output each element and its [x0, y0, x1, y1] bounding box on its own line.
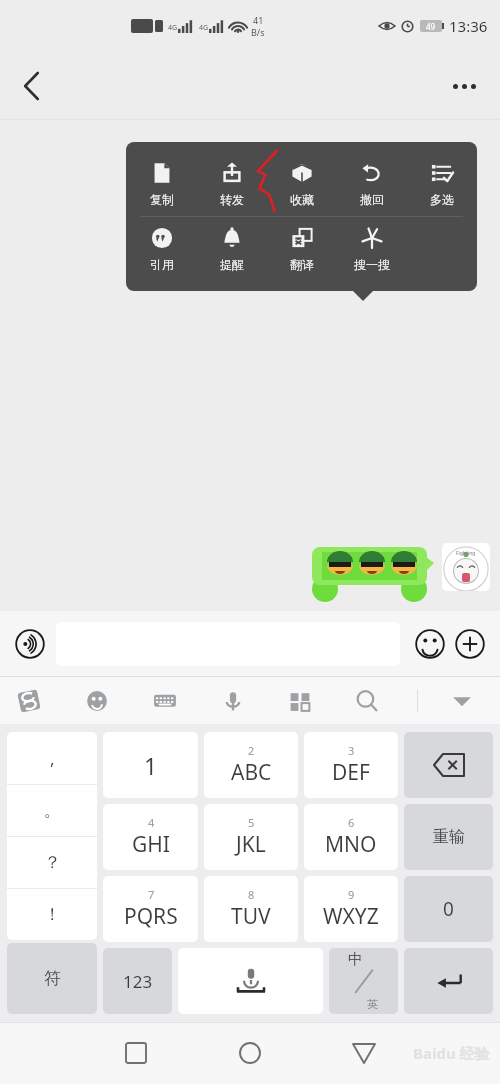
- button[interactable]: 4: [103, 804, 198, 870]
- staticText: 4G: [199, 23, 209, 33]
- staticText: PQRS: [124, 902, 178, 931]
- staticText: B/s: [251, 26, 265, 38]
- staticText: Fighting: [456, 550, 476, 557]
- button[interactable]: More: [450, 624, 490, 664]
- staticText: 收藏: [290, 192, 314, 207]
- button[interactable]: Voice input: [10, 624, 50, 664]
- staticText: MNO: [325, 830, 377, 859]
- staticText: DEF: [332, 758, 370, 787]
- staticText: TUV: [231, 902, 271, 931]
- button[interactable]: Sogou input: [12, 684, 46, 718]
- staticText: 9: [348, 887, 355, 902]
- button[interactable]: Emoji: [80, 684, 114, 718]
- staticText: 2: [248, 743, 255, 758]
- staticText: 符: [44, 968, 61, 989]
- button[interactable]: Home: [226, 1029, 274, 1077]
- button[interactable]: Hide keyboard: [445, 684, 479, 718]
- staticText: 5: [248, 815, 255, 830]
- button[interactable]: 1: [103, 732, 198, 798]
- button[interactable]: 0: [404, 876, 493, 942]
- button[interactable]: Backspace: [404, 732, 493, 798]
- button[interactable]: Back: [6, 60, 58, 112]
- staticText: JKL: [236, 830, 266, 859]
- button[interactable]: 撤回: [337, 152, 407, 216]
- button[interactable]: ,: [7, 732, 97, 784]
- button[interactable]: Space: [178, 948, 323, 1014]
- button[interactable]: 重输: [404, 804, 493, 870]
- button[interactable]: 提醒: [197, 217, 267, 281]
- staticText: Baidu 经验: [413, 1043, 490, 1063]
- staticText: 49: [426, 21, 436, 32]
- staticText: 撤回: [360, 192, 384, 207]
- staticText: ？: [44, 852, 61, 873]
- staticText: 转发: [220, 192, 244, 207]
- button[interactable]: 9: [304, 876, 398, 942]
- button[interactable]: Emoji: [410, 624, 450, 664]
- button[interactable]: Chinese English toggle: [329, 948, 398, 1014]
- button[interactable]: More options: [438, 60, 490, 112]
- button[interactable]: 7: [103, 876, 198, 942]
- button[interactable]: ？: [7, 837, 97, 888]
- staticText: 13:36: [449, 16, 488, 36]
- button[interactable]: 转发: [197, 152, 267, 216]
- staticText: ,: [50, 747, 55, 770]
- staticText: 英: [367, 997, 378, 1011]
- staticText: 1: [144, 750, 158, 781]
- staticText: 3: [348, 743, 355, 758]
- button[interactable]: Recents: [112, 1029, 160, 1077]
- staticText: 翻译: [290, 257, 314, 272]
- button[interactable]: 6: [304, 804, 398, 870]
- button[interactable]: Voice: [216, 684, 250, 718]
- button[interactable]: Panel: [283, 684, 317, 718]
- staticText: 多选: [430, 192, 454, 207]
- staticText: 8: [248, 887, 255, 902]
- staticText: 复制: [150, 192, 174, 207]
- staticText: 。: [44, 800, 61, 821]
- button[interactable]: Search: [350, 684, 384, 718]
- button[interactable]: 123: [103, 948, 172, 1014]
- staticText: 4: [148, 815, 155, 830]
- staticText: 中: [348, 950, 363, 969]
- staticText: 提醒: [220, 257, 244, 272]
- staticText: 123: [123, 970, 153, 993]
- staticText: 重输: [433, 827, 465, 847]
- staticText: 41: [253, 14, 264, 26]
- staticText: GHI: [132, 830, 170, 859]
- button[interactable]: 引用: [126, 217, 197, 281]
- staticText: 4G: [168, 23, 178, 33]
- button[interactable]: Avatar: [442, 543, 490, 591]
- button[interactable]: 。: [7, 785, 97, 836]
- button[interactable]: 搜一搜: [337, 217, 407, 281]
- button[interactable]: 符: [7, 943, 97, 1014]
- staticText: 0: [443, 896, 454, 922]
- staticText: 搜一搜: [354, 257, 390, 272]
- button[interactable]: Back: [340, 1029, 388, 1077]
- button[interactable]: 5: [204, 804, 298, 870]
- staticText: 引用: [150, 257, 174, 272]
- button[interactable]: 8: [204, 876, 298, 942]
- button[interactable]: Enter: [404, 948, 493, 1014]
- button[interactable]: Keyboard layout: [148, 684, 182, 718]
- button[interactable]: 3: [304, 732, 398, 798]
- staticText: ABC: [231, 758, 272, 787]
- staticText: ！: [44, 904, 61, 925]
- button[interactable]: 翻译: [267, 217, 337, 281]
- button[interactable]: 收藏: [267, 152, 337, 216]
- button[interactable]: 复制: [126, 152, 197, 216]
- button[interactable]: 多选: [407, 152, 477, 216]
- button[interactable]: 2: [204, 732, 298, 798]
- staticText: 6: [348, 815, 355, 830]
- button[interactable]: ！: [7, 889, 97, 940]
- staticText: 7: [148, 887, 155, 902]
- staticText: WXYZ: [323, 902, 379, 931]
